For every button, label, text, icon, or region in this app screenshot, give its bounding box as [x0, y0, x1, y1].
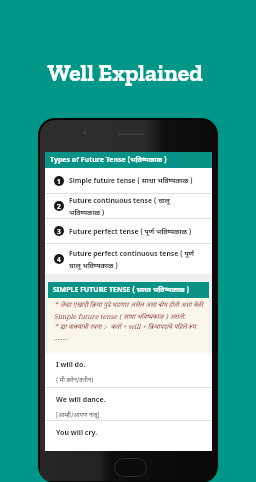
staticText: Future continuous tense ( चालू भविष्यकाळ…	[69, 196, 206, 217]
button[interactable]: 1	[45, 168, 212, 193]
button[interactable]: 4	[45, 244, 212, 274]
staticText: SIMPLE FUTURE TENSE ( साधा भविष्यकाळ )	[53, 285, 190, 295]
button[interactable]: We will dance.	[45, 388, 212, 420]
staticText: Future perfect continuous tense ( पूर्ण …	[69, 249, 206, 270]
staticText: Well Explained	[0, 59, 253, 87]
staticText: 2	[57, 202, 61, 211]
staticText: Simple future tense ( साधा भविष्यकाळ )	[69, 176, 193, 185]
button[interactable]: You will cry.	[45, 421, 212, 451]
staticText: * जेव्हा एखादी क्रिया पुढे घडणार असेल अस…	[54, 301, 205, 323]
staticText: ........	[54, 334, 68, 345]
button[interactable]: I will do.	[45, 353, 212, 387]
staticText: 3	[57, 227, 61, 236]
staticText: ( मी करेन/करीन)	[56, 376, 94, 384]
button[interactable]: 3	[45, 219, 212, 243]
staticText: We will dance.	[56, 395, 106, 405]
staticText: Types of Future Tense (भविष्यकाळ )	[50, 155, 167, 165]
staticText: 1	[57, 177, 61, 186]
staticText: Future perfect tense ( पूर्ण भविष्यकाळ )	[69, 227, 192, 236]
button[interactable]: 2	[45, 194, 212, 218]
staticText: I will do.	[56, 360, 86, 370]
staticText: [आम्ही/आपण नाचू]	[56, 411, 100, 419]
staticText: You will cry.	[56, 428, 98, 438]
staticText: 4	[57, 255, 61, 264]
staticText: * ह्या वाक्याची रचना :- कर्ता + will + क…	[54, 323, 196, 334]
